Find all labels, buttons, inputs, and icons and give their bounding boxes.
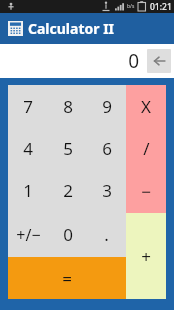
button[interactable]: 0: [48, 212, 87, 257]
button[interactable]: 9: [87, 85, 126, 127]
staticText: 0: [128, 48, 139, 74]
staticText: 01:21: [150, 1, 172, 13]
button[interactable]: +: [126, 213, 166, 299]
button[interactable]: 1: [8, 169, 48, 212]
button[interactable]: /: [126, 127, 166, 170]
staticText: Calculator II: [28, 19, 115, 38]
staticText: 2: [63, 179, 73, 202]
staticText: +: [141, 245, 151, 268]
button[interactable]: 4: [8, 127, 48, 169]
button[interactable]: 7: [8, 85, 48, 127]
button[interactable]: =: [8, 257, 126, 299]
button[interactable]: 3: [87, 169, 126, 212]
staticText: b/s: [127, 3, 135, 10]
staticText: .: [104, 223, 109, 246]
staticText: 0: [63, 223, 73, 246]
staticText: 3: [102, 179, 112, 202]
button[interactable]: Backspace: [147, 49, 171, 73]
button[interactable]: +/−: [8, 212, 48, 257]
staticText: 4: [23, 137, 33, 160]
button[interactable]: X: [126, 85, 166, 127]
staticText: X: [141, 95, 151, 118]
button[interactable]: 8: [48, 85, 87, 127]
staticText: 5: [63, 137, 73, 160]
staticText: /: [143, 137, 150, 160]
button[interactable]: −: [126, 170, 166, 213]
staticText: 9: [102, 95, 112, 118]
staticText: 7: [23, 95, 33, 118]
staticText: =: [62, 267, 72, 290]
staticText: 6: [102, 137, 112, 160]
staticText: 8: [63, 95, 73, 118]
button[interactable]: 5: [48, 127, 87, 169]
button[interactable]: 6: [87, 127, 126, 169]
button[interactable]: 2: [48, 169, 87, 212]
staticText: +/−: [16, 224, 41, 246]
button[interactable]: .: [87, 212, 126, 257]
staticText: −: [141, 180, 151, 203]
staticText: 1: [23, 179, 33, 202]
